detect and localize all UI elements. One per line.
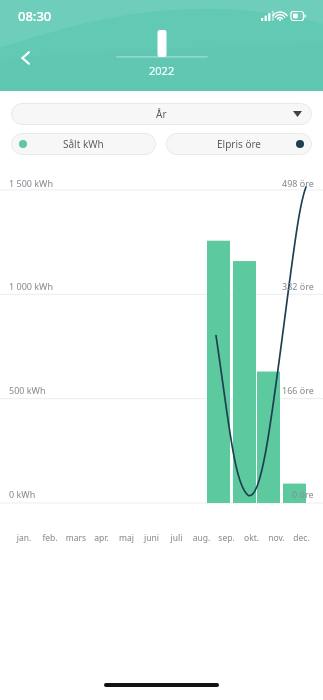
button[interactable]: Sålt kWh <box>11 133 156 155</box>
staticText: okt. <box>239 532 264 544</box>
staticText: aug. <box>189 532 214 544</box>
staticText: dec. <box>289 532 314 544</box>
staticText: nov. <box>264 532 289 544</box>
staticText: feb. <box>37 532 63 544</box>
staticText: apr. <box>89 532 114 544</box>
staticText: 0 kWh <box>9 488 36 500</box>
staticText: Sålt kWh <box>63 137 104 151</box>
staticText: 500 kWh <box>9 384 46 396</box>
staticText: 166 öre <box>282 384 314 396</box>
button[interactable]: Elpris öre <box>166 133 312 155</box>
staticText: Elpris öre <box>217 137 262 151</box>
staticText: 498 öre <box>282 177 314 188</box>
staticText: juni <box>139 532 164 544</box>
staticText: 2022 <box>149 63 175 78</box>
button[interactable]: Back <box>6 38 46 78</box>
staticText: 332 öre <box>282 280 314 292</box>
staticText: 08:30 <box>18 7 52 25</box>
staticText: jan. <box>11 532 37 544</box>
staticText: juli <box>164 532 189 544</box>
staticText: sep. <box>214 532 239 544</box>
button[interactable]: År <box>11 103 312 125</box>
staticText: mars <box>63 532 89 544</box>
staticText: År <box>156 107 167 121</box>
staticText: 1 500 kWh <box>9 177 54 188</box>
staticText: 1 000 kWh <box>9 280 54 292</box>
staticText: maj <box>114 532 139 544</box>
staticText: 0 öre <box>292 488 314 500</box>
